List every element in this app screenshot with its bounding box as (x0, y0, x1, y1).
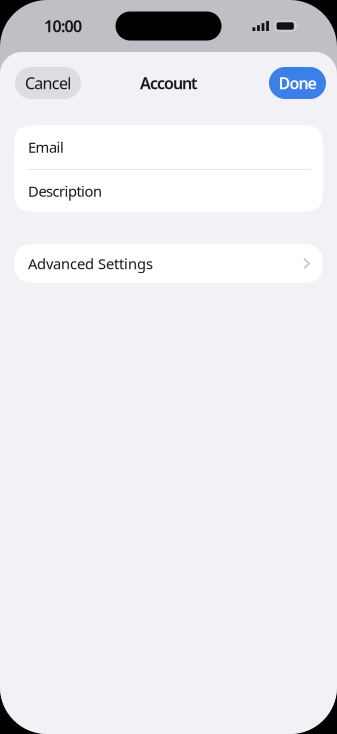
button[interactable]: Cancel (15, 67, 81, 99)
staticText: 10:00 (44, 15, 82, 37)
staticText: Description (28, 181, 102, 201)
button[interactable]: Done (269, 67, 326, 99)
staticText: Account (140, 72, 197, 94)
staticText: Done (278, 72, 316, 94)
staticText: Advanced Settings (28, 254, 153, 273)
staticText: Email (28, 137, 64, 157)
staticText: Cancel (25, 72, 71, 94)
button[interactable]: Advanced Settings (14, 244, 323, 283)
